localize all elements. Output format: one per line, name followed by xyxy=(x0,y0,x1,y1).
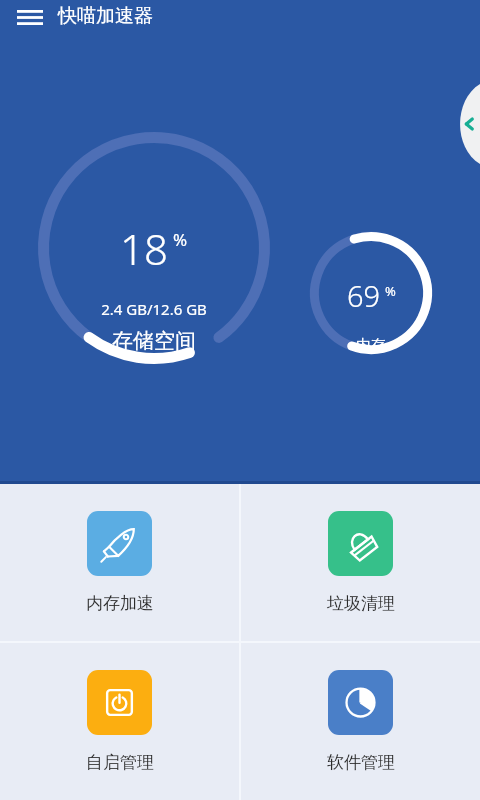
staticText: 69 xyxy=(347,276,381,315)
button[interactable]: 软件管理 xyxy=(241,643,480,800)
staticText: 内存加速 xyxy=(86,593,154,614)
staticText: 内存 xyxy=(310,336,432,355)
staticText: 18 xyxy=(120,220,168,277)
staticText: % xyxy=(173,228,188,251)
staticText: 2.4 GB/12.6 GB xyxy=(38,299,270,319)
button[interactable]: 内存加速 xyxy=(0,484,239,641)
staticText: 快喵加速器 xyxy=(58,4,153,28)
button[interactable]: 自启管理 xyxy=(0,643,239,800)
staticText: 自启管理 xyxy=(86,752,154,773)
button[interactable]: Menu xyxy=(4,0,56,34)
button[interactable]: 垃圾清理 xyxy=(241,484,480,641)
button[interactable]: Open side panel xyxy=(452,84,480,164)
staticText: 软件管理 xyxy=(327,752,395,773)
staticText: 存储空间 xyxy=(38,328,270,354)
staticText: % xyxy=(385,282,396,300)
staticText: 垃圾清理 xyxy=(327,593,395,614)
